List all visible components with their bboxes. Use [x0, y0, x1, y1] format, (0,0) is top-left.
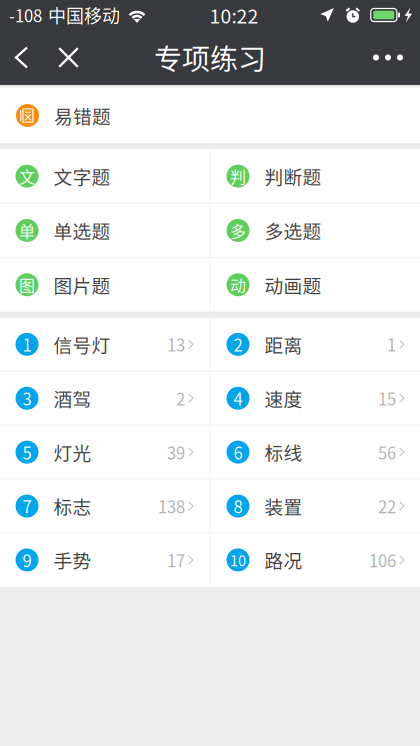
staticText: 动画题	[264, 271, 321, 298]
staticText: 多	[230, 219, 246, 242]
button[interactable]: 5	[0, 426, 209, 479]
button[interactable]: 3	[0, 372, 209, 425]
staticText: 10:22	[209, 1, 258, 29]
staticText: 信号灯	[53, 331, 110, 358]
staticText: 3	[22, 386, 31, 410]
button[interactable]: 单	[0, 204, 209, 257]
staticText: 2	[233, 332, 242, 356]
staticText: 专项练习	[154, 37, 266, 78]
staticText: -108	[9, 3, 42, 27]
staticText: 手势	[53, 546, 91, 573]
staticText: 15	[378, 386, 396, 410]
staticText: 13	[167, 332, 185, 356]
staticText: 6	[233, 440, 242, 464]
staticText: 文	[19, 165, 35, 188]
staticText: 单	[19, 219, 35, 242]
staticText: 10	[230, 549, 246, 570]
staticText: 距离	[264, 331, 302, 358]
staticText: 多选题	[264, 217, 321, 244]
button[interactable]: 7	[0, 480, 209, 532]
staticText: 17	[167, 548, 185, 572]
staticText: 判	[230, 165, 246, 188]
button[interactable]: 多	[210, 204, 420, 257]
staticText: 速度	[264, 385, 302, 412]
staticText: 1	[22, 332, 31, 356]
button[interactable]: More	[356, 30, 420, 85]
button[interactable]: 2	[210, 318, 420, 371]
staticText: 106	[369, 548, 396, 572]
button[interactable]: 易错题	[0, 88, 420, 143]
button[interactable]: 6	[210, 426, 420, 479]
staticText: 灯光	[53, 439, 91, 466]
staticText: 5	[22, 440, 31, 464]
staticText: 装置	[264, 492, 302, 519]
staticText: 56	[378, 440, 396, 464]
button[interactable]: 判	[210, 149, 420, 203]
staticText: 9	[22, 548, 31, 572]
button[interactable]: Back	[0, 30, 45, 85]
staticText: 图片题	[53, 271, 110, 298]
button[interactable]: 动	[210, 258, 420, 311]
button[interactable]: Close	[45, 30, 92, 85]
staticText: 39	[167, 440, 185, 464]
staticText: 1	[387, 332, 396, 356]
staticText: 酒驾	[53, 385, 91, 412]
staticText: 4	[233, 386, 242, 410]
staticText: 中国移动	[48, 2, 120, 28]
staticText: 8	[233, 494, 242, 518]
staticText: 138	[158, 494, 185, 518]
staticText: 7	[22, 494, 31, 518]
button[interactable]: 10	[210, 533, 420, 586]
staticText: 路况	[264, 546, 302, 573]
button[interactable]: 4	[210, 372, 420, 425]
button[interactable]: 文	[0, 149, 209, 203]
staticText: 文字题	[53, 163, 110, 190]
staticText: 单选题	[53, 217, 110, 244]
button[interactable]: 1	[0, 318, 209, 371]
staticText: 易错题	[54, 102, 111, 129]
staticText: 22	[378, 494, 396, 518]
button[interactable]: 9	[0, 533, 209, 586]
staticText: 标线	[264, 439, 302, 466]
staticText: 2	[176, 386, 185, 410]
button[interactable]: 8	[210, 480, 420, 532]
button[interactable]: 图	[0, 258, 209, 311]
staticText: 图	[19, 273, 35, 296]
staticText: 判断题	[264, 163, 321, 190]
staticText: 标志	[53, 492, 91, 519]
staticText: 动	[230, 273, 246, 296]
